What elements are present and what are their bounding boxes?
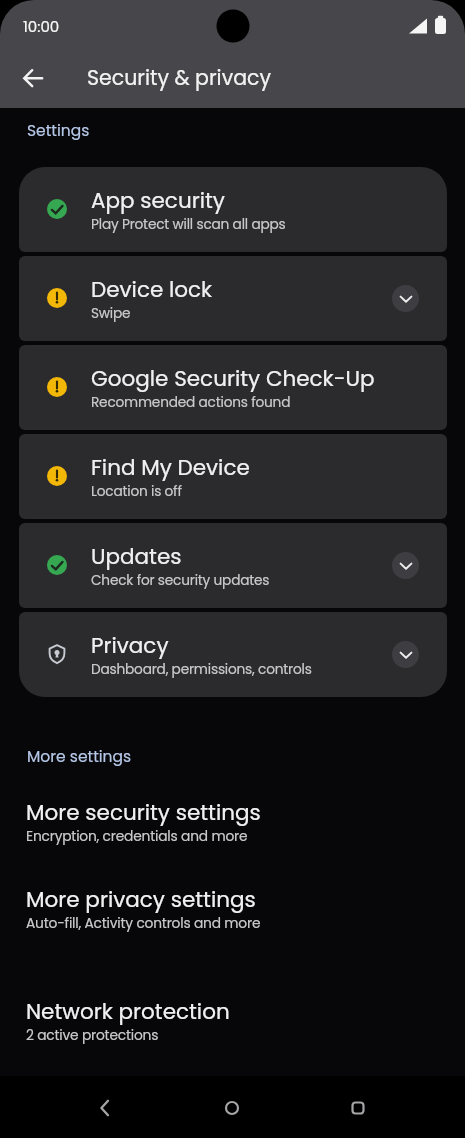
staticText: Location is off <box>91 482 182 501</box>
button[interactable]: Network protection <box>0 996 465 1045</box>
staticText: Settings <box>27 120 90 142</box>
staticText: Google Security Check-Up <box>91 363 375 393</box>
staticText: Privacy <box>91 630 169 660</box>
staticText: Auto-fill, Activity controls and more <box>26 914 261 933</box>
button[interactable] <box>392 641 419 668</box>
button[interactable] <box>212 1088 252 1128</box>
button[interactable] <box>85 1088 125 1128</box>
button[interactable]: App security <box>19 167 447 252</box>
button[interactable]: Google Security Check-Up <box>19 345 447 430</box>
button[interactable]: Device lock <box>19 256 447 341</box>
button[interactable] <box>13 59 53 99</box>
staticText: 10:00 <box>23 16 60 37</box>
button[interactable] <box>392 285 419 312</box>
staticText: Device lock <box>91 274 213 304</box>
staticText: Network protection <box>26 996 230 1026</box>
button[interactable] <box>392 552 419 579</box>
button[interactable]: Find My Device <box>19 434 447 519</box>
staticText: Recommended actions found <box>91 393 291 412</box>
staticText: More settings <box>27 746 132 768</box>
staticText: Security & privacy <box>87 63 271 92</box>
staticText: More security settings <box>26 797 261 827</box>
button[interactable] <box>338 1088 378 1128</box>
staticText: Play Protect will scan all apps <box>91 215 286 234</box>
staticText: More privacy settings <box>26 884 256 914</box>
staticText: Updates <box>91 541 182 571</box>
staticText: Find My Device <box>91 452 250 482</box>
staticText: Swipe <box>91 304 131 323</box>
staticText: 2 active protections <box>26 1026 159 1045</box>
staticText: Check for security updates <box>91 571 270 590</box>
button[interactable]: More security settings <box>0 797 465 846</box>
button[interactable]: Privacy <box>19 612 447 697</box>
staticText: Encryption, credentials and more <box>26 827 248 846</box>
button[interactable]: More privacy settings <box>0 884 465 933</box>
staticText: App security <box>91 185 225 215</box>
staticText: Dashboard, permissions, controls <box>91 660 312 679</box>
button[interactable]: Updates <box>19 523 447 608</box>
